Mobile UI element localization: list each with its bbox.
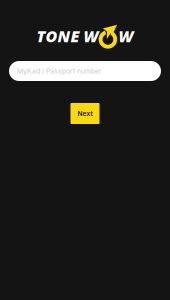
staticText: MyKad / Passport number	[17, 67, 102, 75]
staticText: W	[118, 25, 133, 47]
staticText: W	[83, 25, 98, 47]
button[interactable]: Next	[70, 103, 99, 124]
staticText: Next	[77, 109, 92, 118]
staticText: TONE	[36, 25, 83, 47]
